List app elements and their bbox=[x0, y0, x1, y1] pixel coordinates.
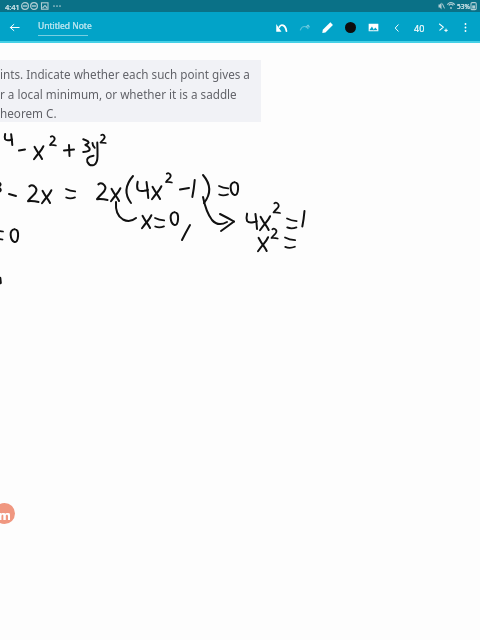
staticText: 4:41 bbox=[5, 2, 20, 12]
button[interactable]: Pen bbox=[316, 12, 339, 43]
staticText: Untitled Note bbox=[38, 20, 92, 32]
staticText: 40 bbox=[414, 22, 425, 34]
button[interactable]: Colour bbox=[339, 12, 362, 43]
button[interactable]: Redo bbox=[293, 12, 316, 43]
button[interactable]: Insert image bbox=[362, 12, 385, 43]
button[interactable]: Untitled Note bbox=[38, 20, 92, 36]
staticText: r a local minimum, or whether it is a sa… bbox=[0, 86, 237, 102]
button[interactable]: Undo bbox=[270, 12, 293, 43]
staticText: ints. Indicate whether each such point g… bbox=[0, 66, 250, 82]
button[interactable]: Previous page bbox=[385, 12, 408, 43]
button[interactable]: More options bbox=[454, 12, 477, 43]
staticText: m bbox=[0, 506, 11, 524]
button[interactable]: Back bbox=[0, 12, 28, 43]
staticText: heorem C. bbox=[0, 105, 57, 121]
button[interactable]: 40 bbox=[408, 12, 431, 43]
button[interactable]: Next page bbox=[431, 12, 454, 43]
staticText: 53% bbox=[457, 2, 470, 11]
